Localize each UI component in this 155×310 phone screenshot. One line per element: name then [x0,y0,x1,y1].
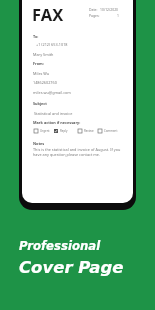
staticText: Reply [60,129,68,133]
staticText: Subject [33,101,47,106]
staticText: Miles Wu [33,71,50,76]
button[interactable]: Urgent [34,129,50,133]
staticText: miles.wu@gmail.com [33,90,71,95]
staticText: Urgent [40,129,50,133]
staticText: Cover Page [19,258,124,277]
staticText: 14862602760 [33,80,57,85]
staticText: Pages: [89,13,100,18]
staticText: Mark action if necessary: [33,120,81,125]
staticText: This is the statistical and invoice of A… [33,147,121,157]
staticText: Statistical and invoice [34,111,73,116]
staticText: To: [33,34,39,39]
button[interactable]: Review [78,129,94,133]
staticText: Date: [89,7,98,12]
staticText: 10/12/2020 [100,7,119,12]
staticText: FAX [32,3,64,25]
staticText: Notes [33,141,45,146]
staticText: Review [84,129,94,133]
button[interactable]: FAX [22,0,133,203]
button[interactable]: Reply [54,129,68,133]
staticText: Comment [104,129,118,133]
staticText: Mary Smith [33,52,54,57]
staticText: From: [33,61,44,66]
button[interactable]: Comment [98,129,118,133]
staticText: 1 [117,13,119,18]
staticText: Professional [19,239,101,253]
staticText: +1 (212) 653-1018 [36,42,68,47]
